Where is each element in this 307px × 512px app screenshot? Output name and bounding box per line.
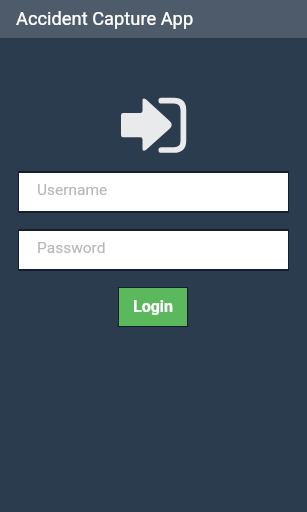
- staticText: Username: [37, 181, 108, 199]
- staticText: Accident Capture App: [16, 8, 194, 29]
- staticText: Login: [133, 297, 174, 316]
- button[interactable]: Login: [119, 288, 187, 326]
- button[interactable]: Username: [19, 173, 288, 211]
- button[interactable]: Password: [19, 231, 288, 269]
- staticText: Password: [37, 239, 106, 257]
- other: Sign in: [121, 98, 188, 153]
